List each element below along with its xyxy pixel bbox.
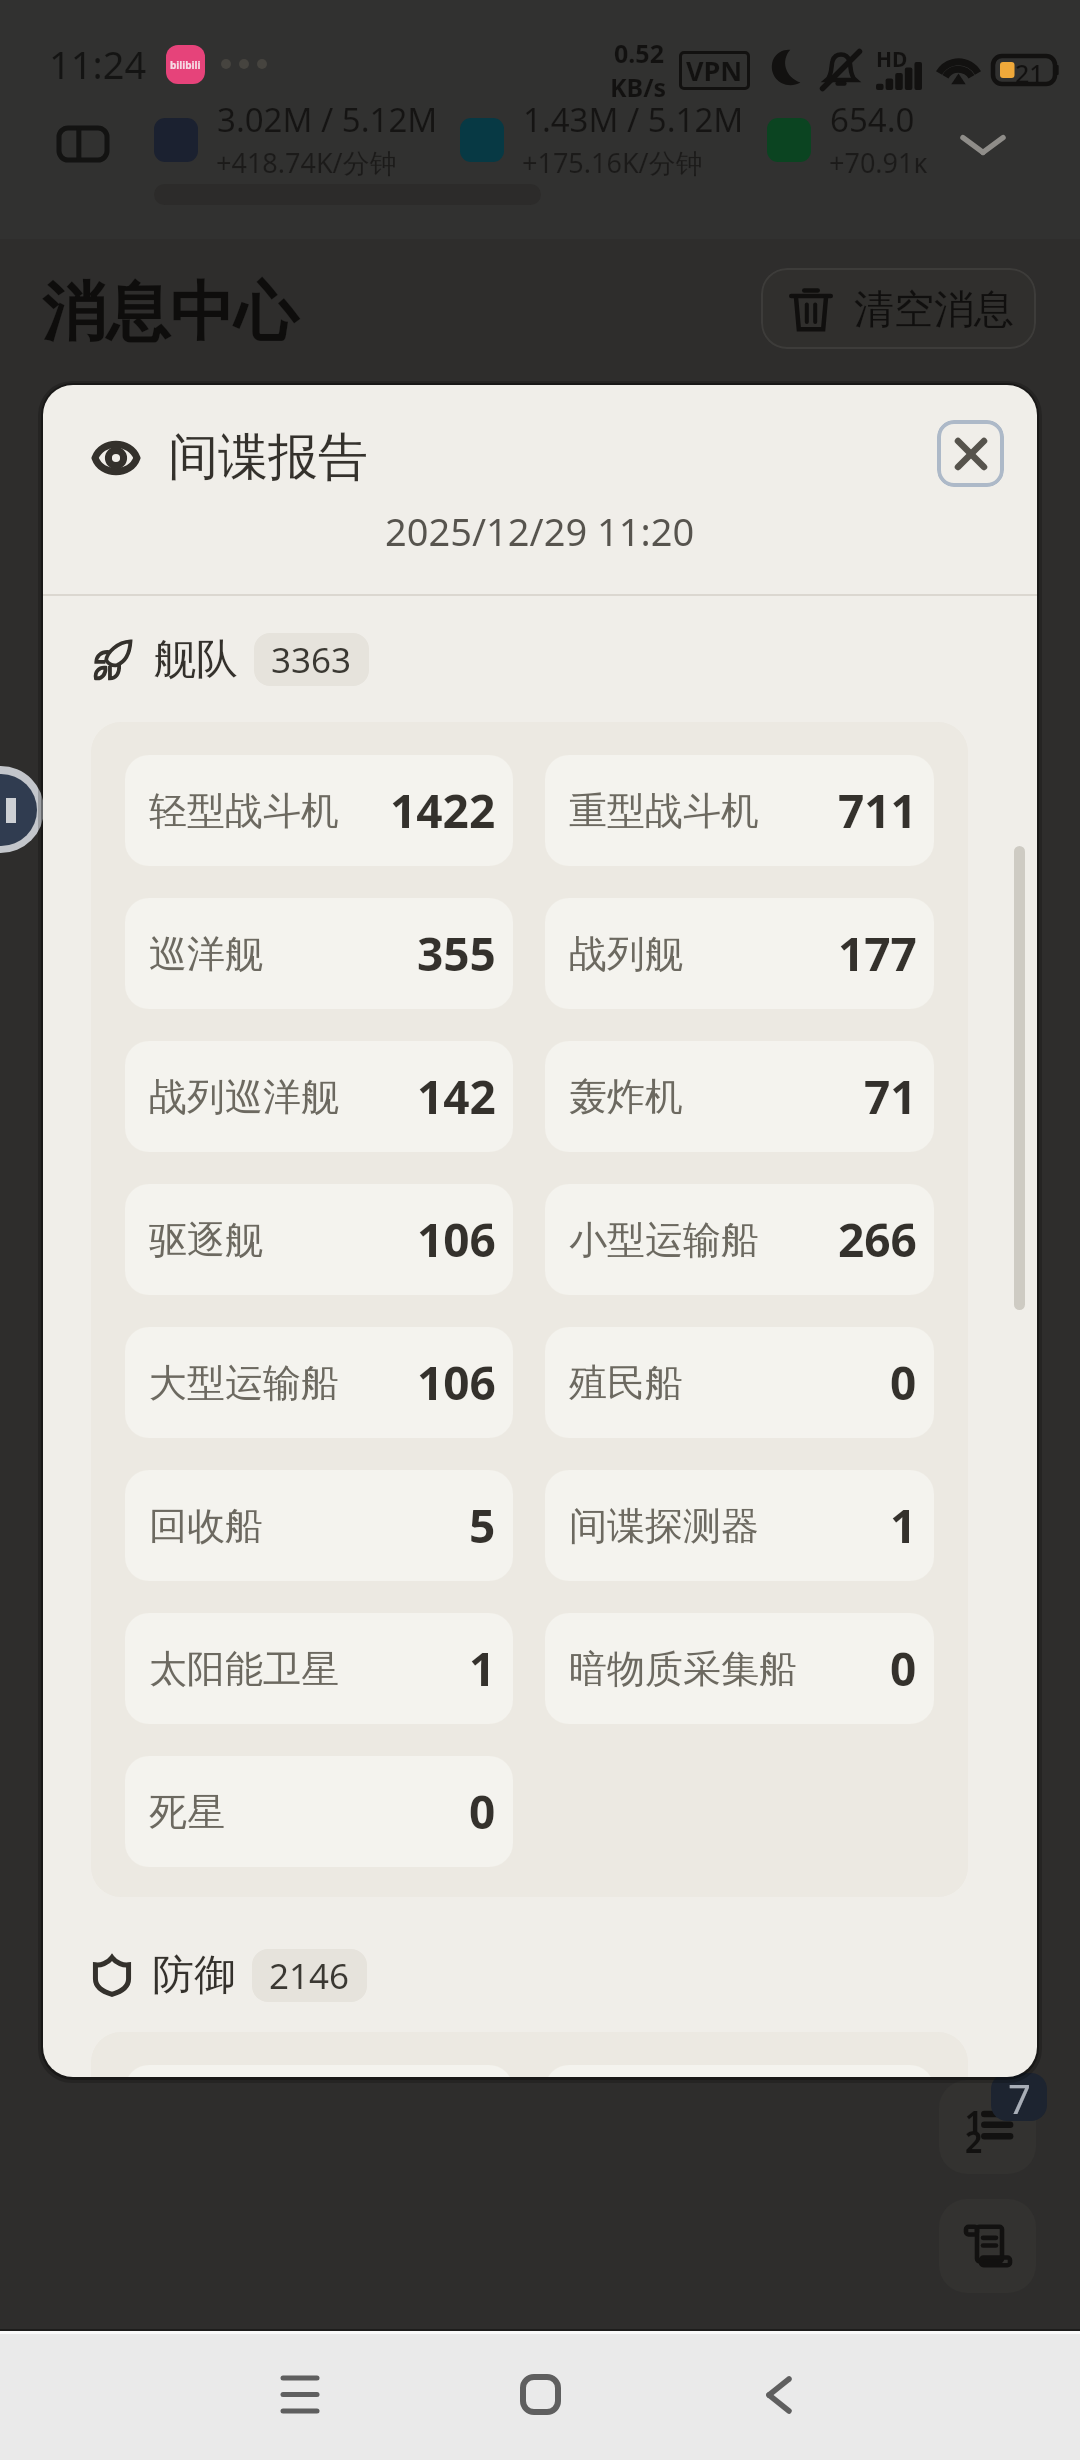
staticText: 舰队: [154, 633, 238, 686]
staticText: 654.0: [830, 97, 915, 142]
staticText: 2: [965, 2121, 983, 2157]
staticText: 1: [890, 1494, 917, 1557]
button[interactable]: Expand: [955, 117, 1011, 173]
button[interactable]: Reports: [939, 2199, 1036, 2293]
button[interactable]: 太阳能卫星: [125, 1613, 513, 1724]
button[interactable]: 巡洋舰: [125, 898, 513, 1009]
staticText: 消息中心: [42, 272, 298, 353]
staticText: 711: [838, 779, 917, 842]
button[interactable]: 死星: [125, 1756, 513, 1867]
button[interactable]: 间谍探测器: [545, 1470, 934, 1581]
staticText: 殖民船: [569, 1359, 683, 1407]
staticText: 3.02M / 5.12M: [217, 97, 438, 142]
staticText: 2146: [269, 1952, 350, 2000]
button[interactable]: 回收船: [125, 1470, 513, 1581]
staticText: 小型运输船: [569, 1216, 759, 1264]
staticText: 1: [965, 2101, 983, 2137]
staticText: 7: [1008, 2073, 1031, 2119]
staticText: 355: [417, 922, 496, 985]
staticText: 重型战斗机: [569, 787, 759, 835]
staticText: 0: [890, 1351, 917, 1414]
button[interactable]: 清空消息: [761, 268, 1036, 349]
staticText: 1422: [390, 779, 496, 842]
button[interactable]: 重型战斗机: [545, 755, 934, 866]
button[interactable]: 战列舰: [545, 898, 934, 1009]
staticText: HD: [876, 45, 908, 74]
staticText: 106: [417, 1351, 496, 1414]
staticText: VPN: [686, 52, 743, 89]
staticText: 清空消息: [854, 284, 1014, 334]
staticText: 轰炸机: [569, 1073, 683, 1121]
staticText: 0: [890, 1637, 917, 1700]
staticText: bilibili: [170, 58, 201, 72]
staticText: 71: [864, 1065, 917, 1128]
staticText: 1: [469, 1637, 496, 1700]
staticText: 间谍探测器: [569, 1502, 759, 1550]
staticText: 死星: [149, 1788, 225, 1836]
button[interactable]: 大型运输船: [125, 1327, 513, 1438]
staticText: 战列巡洋舰: [149, 1073, 339, 1121]
button[interactable]: Layout: [57, 118, 109, 170]
staticText: 106: [417, 1208, 496, 1271]
staticText: 轻型战斗机: [149, 787, 339, 835]
button[interactable]: 轻型战斗机: [125, 755, 513, 866]
staticText: 防御: [152, 1949, 236, 2002]
button[interactable]: Home: [480, 2329, 600, 2460]
staticText: 回收船: [149, 1502, 263, 1550]
button[interactable]: Back: [718, 2329, 838, 2460]
staticText: +70.91ᴋ: [829, 144, 928, 181]
staticText: 5: [469, 1494, 496, 1557]
staticText: 巡洋舰: [149, 930, 263, 978]
staticText: 大型运输船: [149, 1359, 339, 1407]
staticText: 暗物质采集船: [569, 1645, 797, 1693]
staticText: 战列舰: [569, 930, 683, 978]
button[interactable]: 小型运输船: [545, 1184, 934, 1295]
staticText: +175.16K/分钟: [522, 144, 703, 181]
button[interactable]: Pause floating window: [0, 766, 44, 853]
button[interactable]: 驱逐舰: [125, 1184, 513, 1295]
button[interactable]: Message list: [939, 2080, 1036, 2174]
staticText: 1.43M / 5.12M: [523, 97, 744, 142]
staticText: 3363: [271, 636, 352, 684]
staticText: 266: [838, 1208, 917, 1271]
staticText: 驱逐舰: [149, 1216, 263, 1264]
staticText: 间谍报告: [168, 426, 368, 489]
button[interactable]: 殖民船: [545, 1327, 934, 1438]
staticText: KB/s: [610, 70, 667, 104]
staticText: +418.74K/分钟: [216, 144, 397, 181]
button[interactable]: 轰炸机: [545, 1041, 934, 1152]
button[interactable]: 暗物质采集船: [545, 1613, 934, 1724]
staticText: 太阳能卫星: [149, 1645, 339, 1693]
staticText: 2025/12/29 11:20: [385, 505, 695, 557]
staticText: 142: [417, 1065, 496, 1128]
staticText: 177: [838, 922, 917, 985]
button[interactable]: Recents: [240, 2329, 360, 2460]
button[interactable]: Close: [937, 420, 1004, 487]
staticText: 0: [469, 1780, 496, 1843]
staticText: 11:24: [49, 38, 147, 90]
button[interactable]: 战列巡洋舰: [125, 1041, 513, 1152]
staticText: 21: [1015, 56, 1044, 84]
staticText: 0.52: [614, 36, 664, 70]
